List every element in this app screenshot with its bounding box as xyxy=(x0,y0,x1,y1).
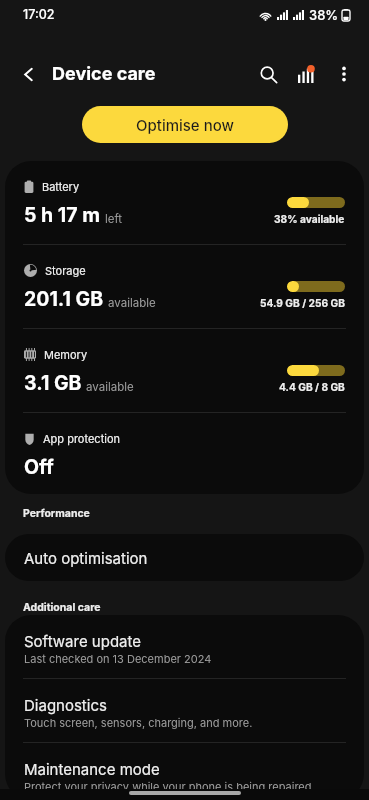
button[interactable]: Storage xyxy=(5,245,364,328)
button[interactable]: Optimise now xyxy=(82,106,288,143)
staticText: 3.1 GB xyxy=(24,371,82,395)
button[interactable]: Navigate up xyxy=(12,58,44,90)
staticText: Performance xyxy=(23,507,90,520)
button[interactable]: Auto optimisation xyxy=(5,534,364,581)
button[interactable]: More options xyxy=(325,55,363,93)
staticText: Last checked on 13 December 2024 xyxy=(24,652,212,665)
staticText: 54.9 GB / 256 GB xyxy=(260,297,345,309)
staticText: Touch screen, sensors, charging, and mor… xyxy=(24,716,253,729)
staticText: Off xyxy=(24,455,54,479)
staticText: Storage xyxy=(45,264,86,277)
staticText: App protection xyxy=(43,432,120,445)
staticText: 5 h 17 m xyxy=(24,203,101,227)
staticText: Protect your privacy while your phone is… xyxy=(24,780,315,793)
button[interactable]: Memory xyxy=(5,329,364,412)
staticText: Optimise now xyxy=(136,116,234,134)
staticText: Additional care xyxy=(23,601,101,614)
staticText: 38% xyxy=(309,7,339,23)
button[interactable]: Search xyxy=(249,55,287,93)
button[interactable]: Battery xyxy=(5,161,364,244)
staticText: Maintenance mode xyxy=(24,760,160,778)
button[interactable]: App protection xyxy=(5,413,364,494)
staticText: left xyxy=(105,212,123,226)
button[interactable]: Software update xyxy=(5,615,364,678)
staticText: Diagnostics xyxy=(24,696,107,714)
staticText: Battery xyxy=(42,180,80,193)
staticText: Software update xyxy=(24,632,142,650)
staticText: 201.1 GB xyxy=(24,287,104,311)
button[interactable]: Diagnostics xyxy=(5,679,364,742)
staticText: Auto optimisation xyxy=(24,549,148,567)
staticText: Device care xyxy=(52,63,156,85)
staticText: 38% available xyxy=(274,213,345,225)
staticText: available xyxy=(86,380,134,394)
staticText: Memory xyxy=(44,348,88,361)
staticText: available xyxy=(108,296,156,310)
staticText: 17:02 xyxy=(23,7,55,22)
staticText: 4.4 GB / 8 GB xyxy=(279,381,345,393)
button[interactable]: Usage statistics xyxy=(287,55,325,93)
button[interactable]: Maintenance mode xyxy=(5,743,364,800)
